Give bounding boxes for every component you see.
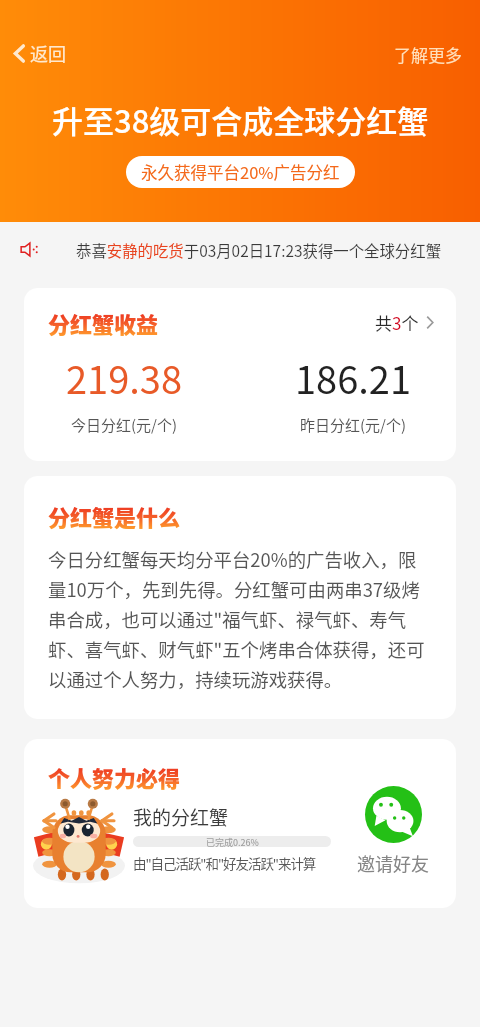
staticText: 219.38: [66, 350, 183, 405]
button[interactable]: 返回: [8, 36, 72, 70]
staticText: 邀请好友: [357, 850, 429, 876]
staticText: 昨日分红(元/个): [300, 414, 407, 436]
staticText: 已完成0.26%: [206, 836, 259, 847]
staticText: 我的分红蟹: [133, 803, 229, 831]
staticText: 恭喜安静的吃货于03月02日17:23获得一个全球分红蟹: [76, 239, 442, 261]
button[interactable]: 共3个: [371, 306, 438, 339]
staticText: 分红蟹是什么: [48, 500, 181, 532]
staticText: 共3个: [375, 310, 419, 335]
staticText: 186.21: [295, 350, 412, 405]
staticText: 今日分红(元/个): [71, 414, 178, 436]
staticText: 永久获得平台20%广告分红: [141, 160, 340, 184]
staticText: 返回: [30, 40, 66, 66]
button[interactable]: 永久获得平台20%广告分红: [126, 156, 355, 188]
staticText: 升至38级可合成全球分红蟹: [52, 97, 429, 142]
staticText: 个人努力必得: [48, 761, 181, 793]
staticText: 分红蟹收益: [48, 307, 159, 339]
staticText: 由"自己活跃"和"好友活跃"来计算: [133, 853, 316, 873]
staticText: 了解更多: [394, 42, 462, 67]
staticText: 今日分红蟹每天均分平台20%的广告收入，限量10万个，先到先得。分红蟹可由两串3…: [48, 546, 432, 692]
other: Announcement: [20, 241, 39, 258]
button[interactable]: Invite friends on WeChat: [341, 786, 445, 876]
other: Invite friends on WeChat: [365, 786, 422, 843]
button[interactable]: 了解更多: [390, 38, 466, 71]
